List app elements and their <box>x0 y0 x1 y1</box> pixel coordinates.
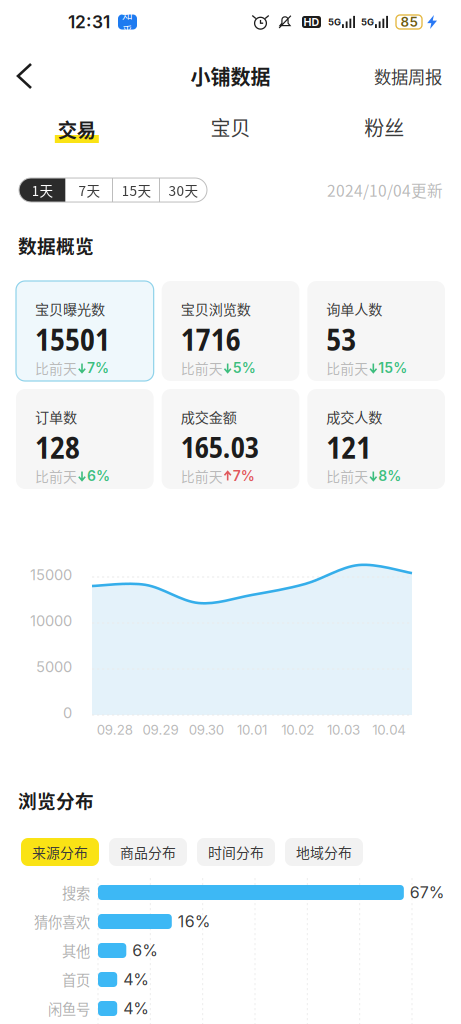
staticText: 1716 <box>181 319 241 359</box>
staticText: 30天 <box>168 180 198 200</box>
button[interactable]: 7天 <box>66 178 113 202</box>
button[interactable]: 来源分布 <box>21 838 99 866</box>
staticText: 10.01 <box>237 722 267 738</box>
staticText: 比前天 <box>35 358 77 378</box>
staticText: HD <box>303 15 319 28</box>
staticText: 时间分布 <box>208 842 264 862</box>
button[interactable]: 宝贝曝光数 <box>16 281 154 381</box>
staticText: 5G <box>328 16 341 28</box>
staticText: 订单数 <box>35 406 77 427</box>
staticText: 询单人数 <box>326 298 382 319</box>
staticText: 小铺数据 <box>190 61 270 90</box>
staticText: 成交金额 <box>181 406 237 427</box>
staticText: 1天 <box>31 180 53 200</box>
staticText: 6% <box>132 941 158 960</box>
button[interactable]: 30天 <box>160 178 207 202</box>
staticText: 09.29 <box>143 722 179 738</box>
staticText: 4% <box>123 999 149 1018</box>
staticText: 宝贝曝光数 <box>35 298 105 319</box>
staticText: 10.04 <box>372 722 406 738</box>
staticText: 16% <box>178 912 211 931</box>
button[interactable]: 15天 <box>113 178 160 202</box>
staticText: 5G <box>361 16 374 28</box>
staticText: 09.30 <box>189 722 224 738</box>
staticText: 比前天 <box>326 358 368 378</box>
button[interactable]: Back <box>0 55 49 97</box>
staticText: 地域分布 <box>296 842 352 862</box>
staticText: 67% <box>410 883 445 902</box>
staticText: 来源分布 <box>32 842 88 862</box>
button[interactable]: 询单人数 <box>307 281 445 381</box>
staticText: 粉丝 <box>364 112 404 141</box>
staticText: 搜索 <box>62 882 90 903</box>
staticText: 6% <box>87 467 110 484</box>
staticText: 15天 <box>121 180 151 200</box>
staticText: 0 <box>63 704 72 722</box>
button[interactable]: 宝贝浏览数 <box>162 281 299 381</box>
staticText: 比前天 <box>326 466 368 486</box>
staticText: 12:31 <box>68 11 110 32</box>
staticText: 闲鱼号 <box>48 998 90 1019</box>
staticText: 5% <box>233 359 256 376</box>
staticText: 121 <box>326 427 371 467</box>
staticText: 宝贝 <box>210 112 250 141</box>
staticText: 比前天 <box>181 358 223 378</box>
button[interactable]: 地域分布 <box>285 838 363 866</box>
staticText: 数据概览 <box>18 231 94 258</box>
button[interactable]: 订单数 <box>16 389 154 489</box>
staticText: 4% <box>123 970 149 989</box>
staticText: 7% <box>87 359 109 376</box>
staticText: 首页 <box>62 969 90 990</box>
button[interactable]: 宝贝 <box>154 111 307 143</box>
button[interactable]: 交易 <box>0 111 154 143</box>
staticText: 53 <box>326 319 356 359</box>
button[interactable]: 成交人数 <box>307 389 445 489</box>
staticText: 比前天 <box>35 466 77 486</box>
staticText: 2024/10/04更新 <box>327 179 443 201</box>
staticText: 猜你喜欢 <box>34 911 90 932</box>
staticText: 7天 <box>78 180 100 200</box>
staticText: 10.02 <box>281 722 314 738</box>
button[interactable]: 商品分布 <box>109 838 187 866</box>
staticText: 交易 <box>58 115 96 143</box>
staticText: 成交人数 <box>326 406 382 427</box>
staticText: 知乎 <box>122 7 133 37</box>
staticText: 15000 <box>30 566 72 584</box>
button[interactable]: 成交金额 <box>162 389 299 489</box>
staticText: 浏览分布 <box>18 786 94 813</box>
staticText: 5000 <box>36 658 72 676</box>
staticText: 比前天 <box>181 466 223 486</box>
button[interactable]: 1天 <box>19 178 66 202</box>
staticText: 15501 <box>35 319 110 359</box>
staticText: 165.03 <box>181 427 259 466</box>
staticText: 128 <box>35 427 80 467</box>
button[interactable]: 粉丝 <box>307 111 461 143</box>
staticText: 10000 <box>30 612 72 630</box>
button[interactable]: 时间分布 <box>197 838 275 866</box>
staticText: 宝贝浏览数 <box>181 298 251 319</box>
staticText: 10.03 <box>327 722 360 738</box>
staticText: 09.28 <box>97 722 133 738</box>
staticText: 商品分布 <box>120 842 176 862</box>
button[interactable]: 数据周报 <box>374 55 461 97</box>
staticText: 7% <box>233 467 255 484</box>
staticText: 其他 <box>62 940 90 961</box>
staticText: 8% <box>378 467 401 484</box>
staticText: 数据周报 <box>374 63 442 89</box>
staticText: 15% <box>378 359 407 376</box>
staticText: 85 <box>400 14 417 30</box>
